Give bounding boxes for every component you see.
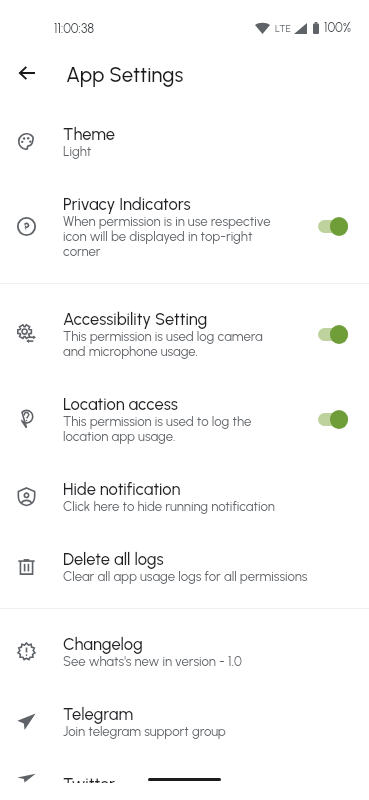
staticText: See whats's new in version - 1.0 (63, 654, 242, 669)
staticText: This permission is used log camera and m… (63, 329, 283, 359)
button[interactable]: Location access toggle (313, 404, 353, 434)
staticText: This permission is used to log the locat… (63, 414, 283, 444)
staticText: 100% (324, 20, 352, 36)
button[interactable]: Telegram (0, 686, 369, 756)
staticText: Location access (63, 393, 178, 414)
staticText: Delete all logs (63, 548, 164, 569)
button[interactable]: Privacy Indicators toggle (313, 211, 353, 241)
button[interactable]: Hide notification (0, 461, 369, 531)
staticText: When permission is in use respective ico… (63, 214, 283, 259)
staticText: Twitter (63, 773, 116, 783)
staticText: LTE (275, 22, 291, 34)
staticText: Click here to hide running notification (63, 499, 275, 514)
staticText: Changelog (63, 633, 143, 654)
staticText: Accessibility Setting (63, 308, 208, 329)
staticText: Join telegram support group (63, 724, 226, 739)
button[interactable]: Back (5, 51, 49, 95)
staticText: Theme (63, 123, 115, 144)
staticText: Telegram (63, 703, 134, 724)
staticText: Light (63, 144, 92, 159)
button[interactable]: Privacy Indicators (0, 176, 369, 276)
staticText: 11:00:38 (54, 21, 95, 37)
button[interactable]: Location access (0, 376, 369, 461)
button[interactable]: Changelog (0, 616, 369, 686)
staticText: Privacy Indicators (63, 193, 191, 214)
staticText: Hide notification (63, 478, 181, 499)
staticText: Clear all app usage logs for all permiss… (63, 569, 308, 584)
button[interactable]: Accessibility Setting toggle (313, 319, 353, 349)
button[interactable]: Accessibility Setting (0, 291, 369, 376)
button[interactable]: Twitter (0, 756, 369, 800)
staticText: App Settings (66, 63, 184, 88)
button[interactable]: Theme (0, 106, 369, 176)
button[interactable]: Delete all logs (0, 531, 369, 601)
